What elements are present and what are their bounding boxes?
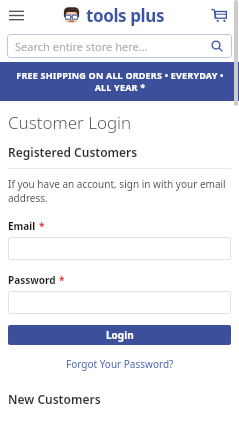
button[interactable]: Menu	[6, 5, 26, 25]
staticText: Password	[8, 273, 56, 287]
staticText: Forgot Your Password?	[66, 357, 174, 371]
button[interactable]: Login	[8, 325, 231, 345]
button[interactable]: FREE SHIPPING ON ALL ORDERS • EVERYDAY •…	[0, 62, 239, 101]
staticText: FREE SHIPPING ON ALL ORDERS • EVERYDAY •…	[16, 69, 224, 94]
staticText: Registered Customers	[8, 144, 138, 160]
staticText: Customer Login	[8, 111, 132, 134]
staticText: *	[59, 273, 65, 287]
button[interactable]	[8, 237, 231, 260]
staticText: tools plus	[86, 4, 165, 27]
staticText: *	[39, 219, 45, 233]
other: Search	[210, 39, 224, 53]
button[interactable]: Forgot Your Password?	[60, 355, 180, 373]
button[interactable]	[8, 291, 231, 314]
staticText: Login	[106, 328, 134, 342]
staticText: New Customers	[8, 391, 101, 407]
button[interactable]: tools plus	[62, 4, 165, 27]
staticText: Email	[8, 219, 36, 233]
button[interactable]: Cart	[208, 4, 230, 26]
staticText: If you have an account, sign in with you…	[8, 177, 226, 205]
button[interactable]: Search entire store here...	[7, 34, 232, 58]
staticText: Search entire store here...	[15, 39, 148, 54]
